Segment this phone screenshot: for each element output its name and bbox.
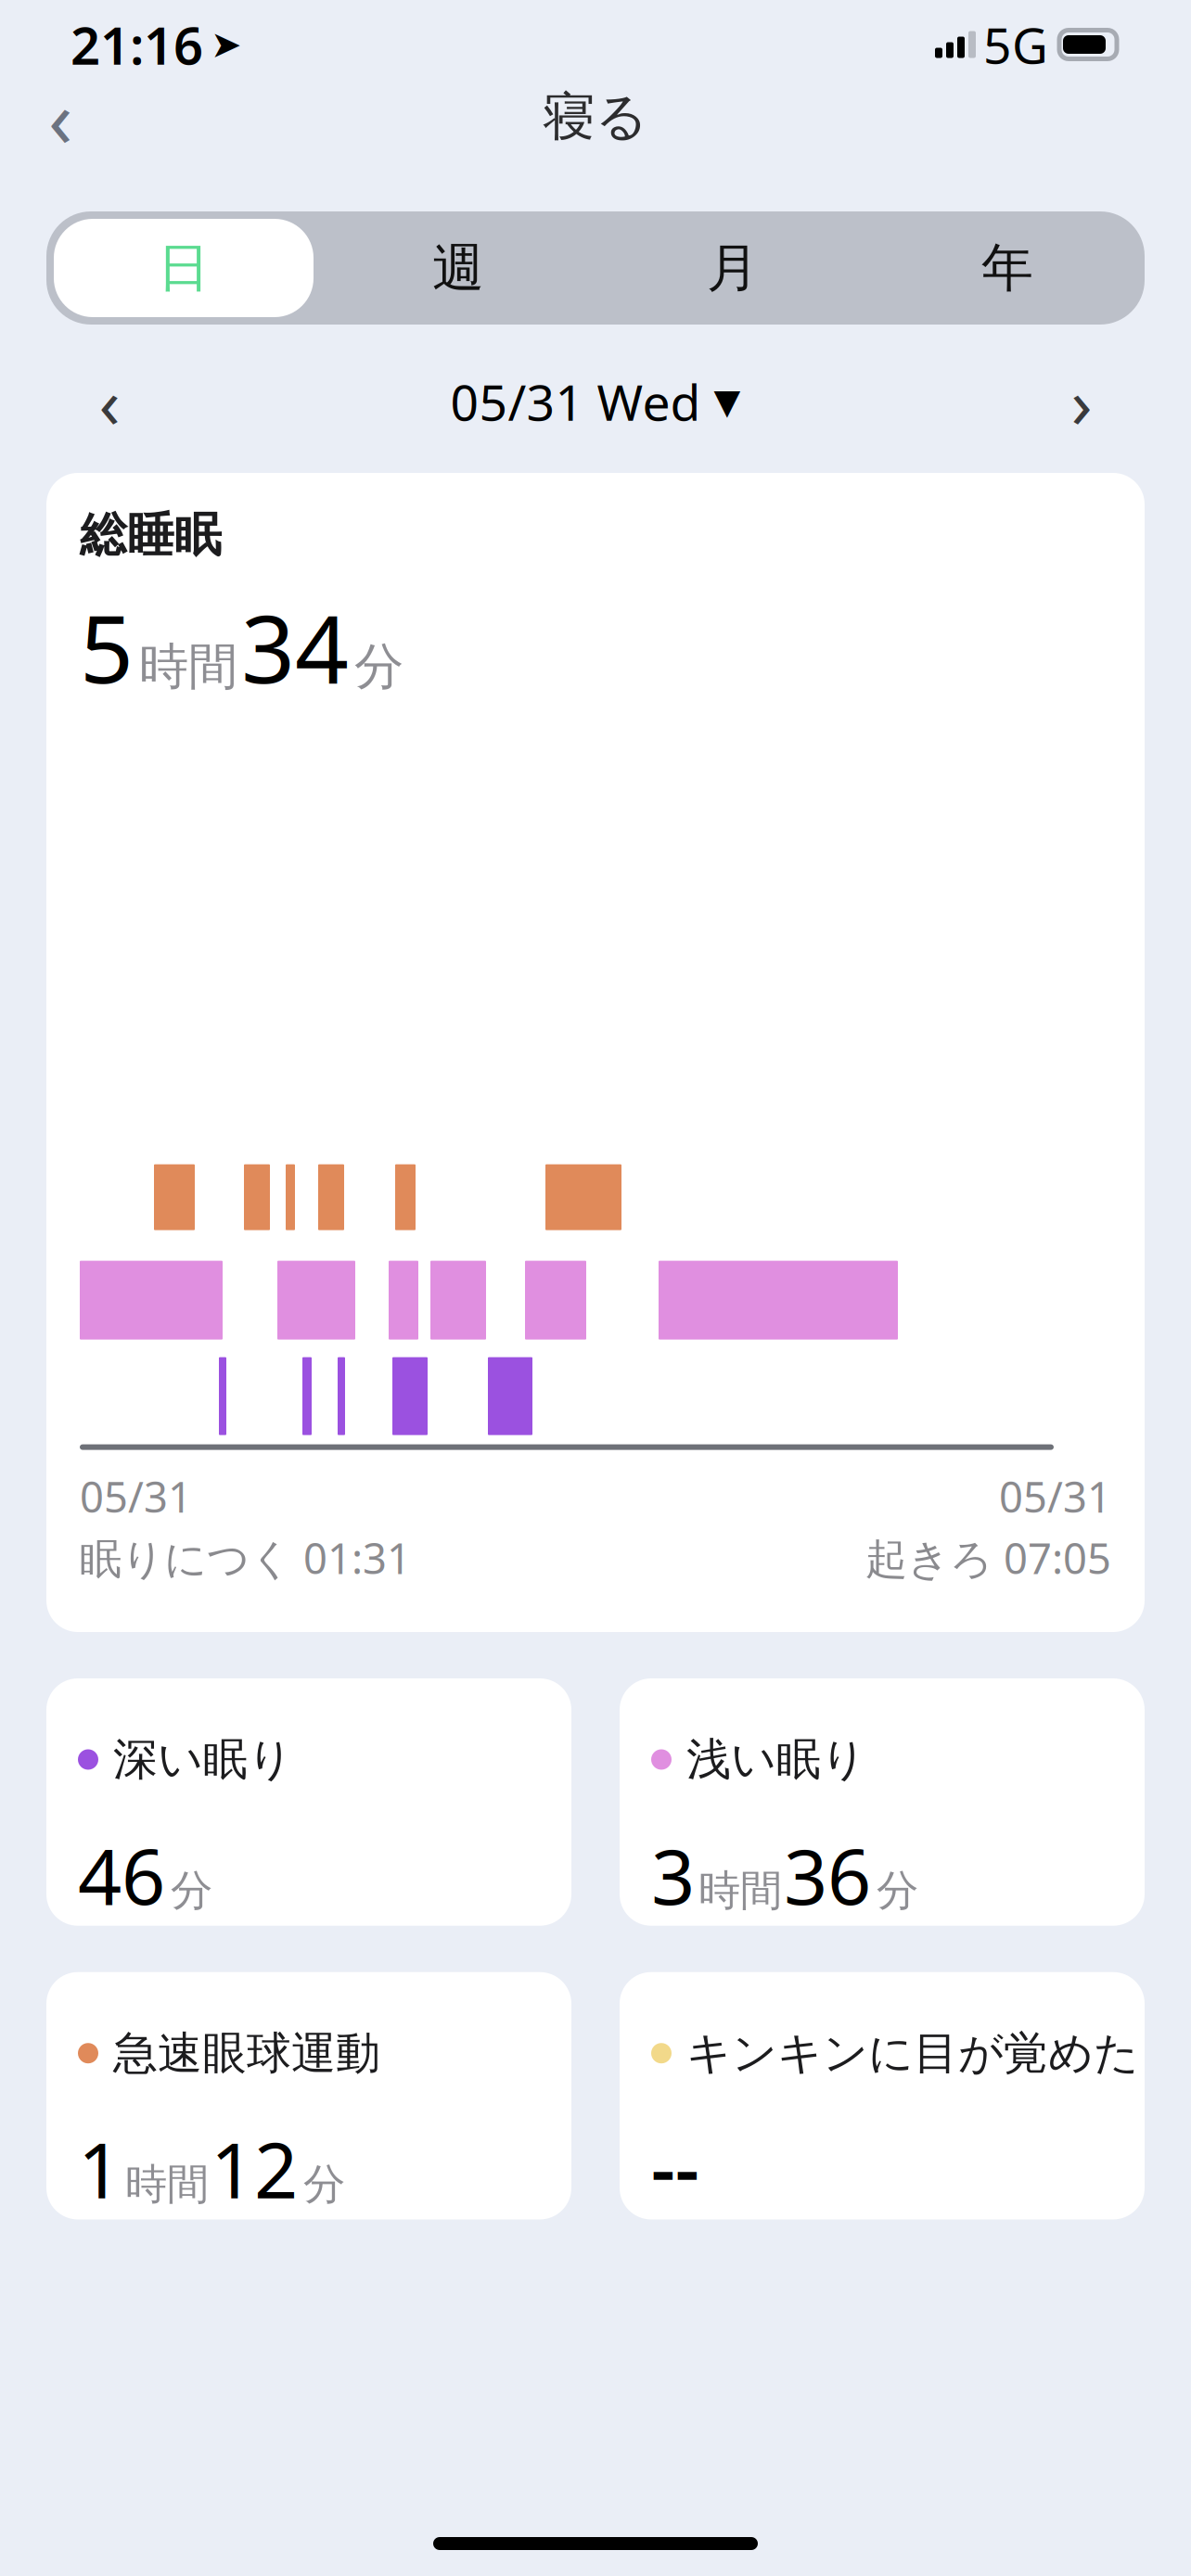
staticText: › xyxy=(1071,356,1092,448)
staticText: -- xyxy=(651,2118,699,2216)
staticText: ▼ xyxy=(714,382,741,421)
staticText: 分 xyxy=(171,1865,212,1916)
staticText: 5 xyxy=(80,584,134,709)
button[interactable]: 急速眼球運動 xyxy=(46,1972,571,2219)
staticText: 総睡眠 xyxy=(80,506,222,564)
staticText: 05/31 Wed xyxy=(450,369,701,434)
staticText: 眠りにつく 01:31 xyxy=(80,1530,411,1586)
staticText: 時間 xyxy=(125,2158,209,2210)
button[interactable]: 年 xyxy=(870,211,1145,325)
button[interactable]: Next day xyxy=(1037,362,1126,441)
staticText: 21:16 xyxy=(70,10,203,79)
staticText: 05/31 xyxy=(80,1468,192,1524)
staticText: ‹ xyxy=(99,356,120,448)
staticText: 34 xyxy=(241,584,349,709)
staticText: 時間 xyxy=(698,1865,782,1916)
staticText: 分 xyxy=(303,2158,345,2210)
staticText: ➤ xyxy=(211,23,242,66)
staticText: 05/31 xyxy=(999,1468,1111,1524)
button[interactable]: Previous day xyxy=(65,362,154,441)
button[interactable]: 月 xyxy=(595,211,870,325)
staticText: 1 xyxy=(78,2118,122,2219)
staticText: 日 xyxy=(158,236,210,300)
staticText: 月 xyxy=(707,236,759,300)
button[interactable]: 05/31 Wed xyxy=(450,362,741,441)
button[interactable]: 週 xyxy=(321,211,595,325)
button[interactable]: キンキンに目が覚めた xyxy=(620,1972,1145,2219)
staticText: 急速眼球運動 xyxy=(113,2026,380,2081)
staticText: 寝る xyxy=(543,85,648,149)
staticText: 浅い眠り xyxy=(686,1732,866,1787)
button[interactable]: 深い眠り xyxy=(46,1678,571,1926)
button[interactable]: 日 xyxy=(46,219,321,317)
button[interactable]: 浅い眠り xyxy=(620,1678,1145,1926)
staticText: 5G xyxy=(983,12,1048,77)
staticText: 46 xyxy=(78,1824,165,1926)
staticText: 深い眠り xyxy=(113,1732,293,1787)
staticText: 分 xyxy=(877,1865,918,1916)
staticText: 週 xyxy=(432,236,484,300)
staticText: 起きろ 07:05 xyxy=(865,1530,1111,1586)
staticText: 3 xyxy=(651,1824,695,1926)
staticText: 時間 xyxy=(139,636,237,697)
staticText: 年 xyxy=(981,236,1033,300)
staticText: 12 xyxy=(211,2118,298,2219)
staticText: 分 xyxy=(354,636,403,697)
staticText: 36 xyxy=(784,1824,871,1926)
button[interactable]: Back xyxy=(48,75,132,159)
staticText: キンキンに目が覚めた xyxy=(686,2026,1139,2081)
staticText: ‹ xyxy=(48,64,72,169)
